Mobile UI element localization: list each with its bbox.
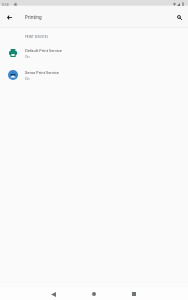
button[interactable]: Back bbox=[43, 287, 63, 300]
staticText: Default Print Service bbox=[25, 48, 63, 53]
staticText: 8:58 bbox=[2, 2, 9, 7]
button[interactable]: Default Print Service bbox=[0, 44, 188, 67]
button[interactable]: Xerox Print Service bbox=[0, 66, 188, 89]
staticText: Printing bbox=[25, 14, 42, 20]
staticText: On bbox=[25, 76, 30, 80]
button[interactable]: Navigate up bbox=[2, 10, 17, 25]
button[interactable]: Search bbox=[172, 10, 187, 25]
staticText: PRINT SERVICES bbox=[25, 35, 49, 39]
staticText: On bbox=[25, 54, 30, 58]
staticText: Xerox Print Service bbox=[25, 70, 60, 75]
button[interactable]: Recent apps bbox=[124, 287, 144, 300]
button[interactable]: Home bbox=[84, 287, 104, 300]
